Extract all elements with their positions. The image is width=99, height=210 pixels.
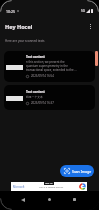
button[interactable]: Text content <box>4 51 95 82</box>
staticText: 我是一个文本 <box>26 95 43 99</box>
staticText: n this section, we present the quantum s… <box>26 60 77 72</box>
staticText: Here are your scanned texts <box>5 39 45 43</box>
staticText: This is a sample text ad. <box>39 186 64 189</box>
staticText: 2023/09/14 16:54 <box>31 74 54 78</box>
staticText: Scan Image <box>72 169 92 174</box>
button[interactable]: More options <box>86 22 95 31</box>
button[interactable]: Back <box>17 194 28 205</box>
staticText: 10:25 <box>6 9 15 14</box>
button[interactable]: Home <box>44 194 55 205</box>
staticText: Hey Hocel <box>5 23 33 30</box>
staticText: 5G <box>81 9 85 13</box>
button[interactable]: Text content <box>4 85 95 110</box>
staticText: Text content <box>26 55 45 59</box>
staticText: Text content <box>26 90 45 94</box>
button[interactable]: Scan Image <box>60 165 94 177</box>
button[interactable]: Microsoft <box>11 182 87 191</box>
staticText: Test Ad <box>45 182 53 185</box>
button[interactable]: Recent apps <box>69 194 80 205</box>
staticText: Microsoft <box>13 185 25 189</box>
staticText: 2023/09/14 16:37 <box>31 101 54 105</box>
